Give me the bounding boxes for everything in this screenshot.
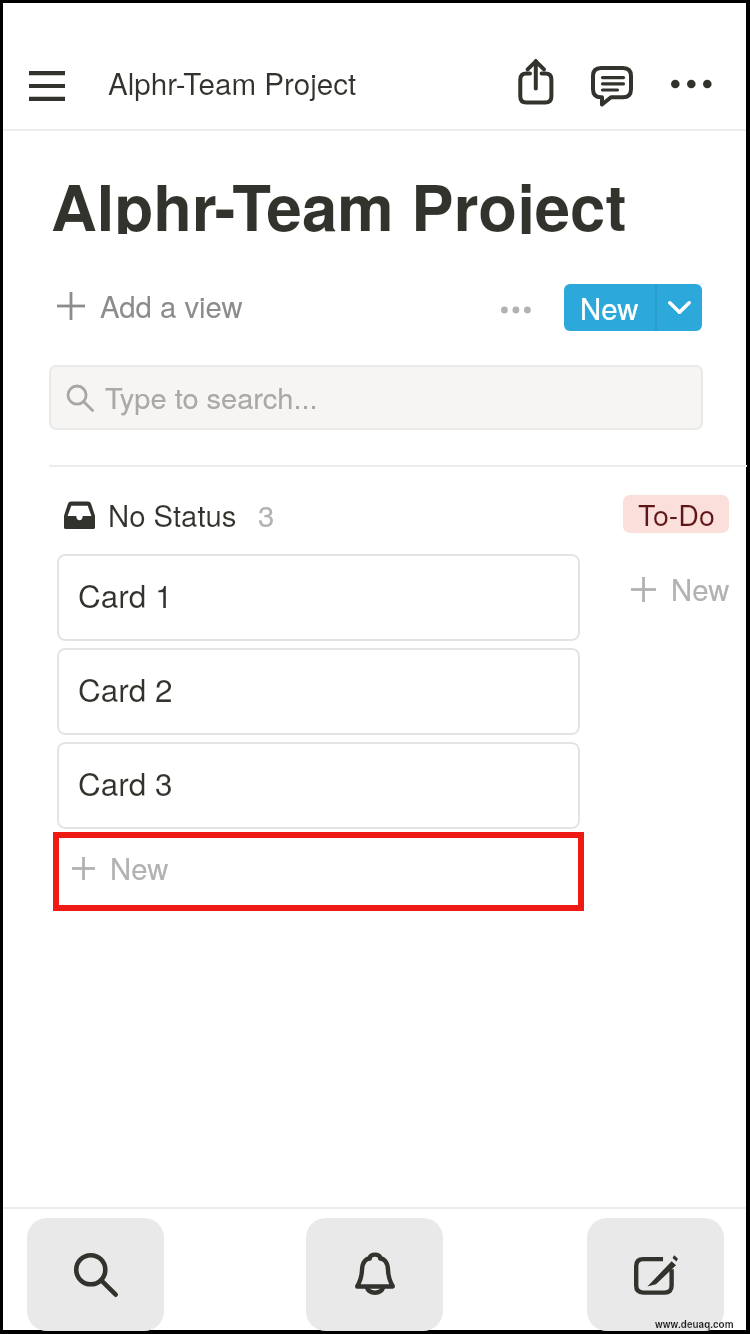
button[interactable]: Card 3 [57,742,580,829]
staticText: Card 1 [78,574,173,617]
button[interactable]: Card 2 [57,648,580,735]
button[interactable]: New [631,569,730,609]
button[interactable]: New [564,284,702,331]
button[interactable]: New [53,832,584,911]
staticText: Alphr-Team Project [51,164,627,234]
button[interactable]: Add a view [57,281,243,331]
button[interactable]: Share [505,50,569,118]
staticText: New [671,569,730,609]
button[interactable]: No Status [64,495,275,533]
staticText: New [110,848,169,888]
button[interactable]: To-Do [623,495,729,533]
staticText: No Status [108,495,237,533]
button[interactable]: Comments [580,53,644,117]
button[interactable]: Type to search... [49,365,703,430]
staticText: Alphr-Team Project [108,63,357,101]
staticText: www.deuaq.com [655,1317,734,1331]
button[interactable]: More options [663,62,719,106]
button[interactable]: Menu [23,67,71,105]
button[interactable]: Card 1 [57,554,580,641]
staticText: Card 2 [78,668,173,711]
button[interactable]: Compose [587,1218,724,1331]
staticText: 3 [258,495,275,533]
staticText: Card 3 [78,762,173,805]
button[interactable]: Search [27,1218,164,1331]
button[interactable]: Notifications [306,1218,443,1331]
staticText: Add a view [100,286,243,326]
button[interactable]: View options [493,290,539,330]
staticText: New [580,288,639,328]
staticText: Type to search... [105,378,318,417]
staticText: To-Do [638,495,715,533]
